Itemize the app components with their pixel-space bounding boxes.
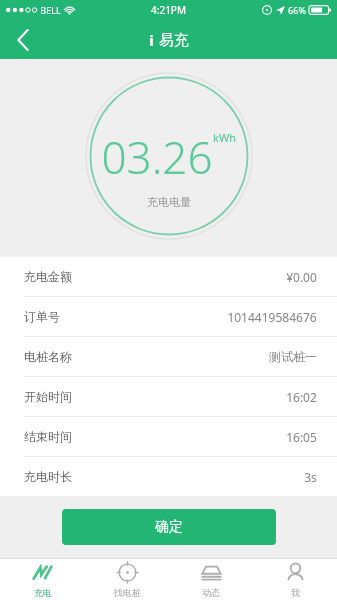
staticText: 电桩名称: [24, 349, 72, 364]
staticText: 1014419584676: [227, 309, 317, 325]
button[interactable]: 找电桩: [85, 559, 169, 600]
button[interactable]: 动态: [169, 559, 253, 600]
staticText: 确定: [155, 518, 183, 536]
staticText: 16:02: [286, 389, 317, 405]
staticText: 测试桩一: [269, 349, 317, 364]
staticText: 66%: [288, 4, 306, 16]
staticText: 3s: [304, 469, 317, 485]
staticText: 03.26: [101, 127, 213, 187]
staticText: 充电金额: [24, 269, 72, 284]
staticText: 充电电量: [147, 195, 191, 209]
button[interactable]: 开始时间: [0, 377, 337, 416]
staticText: 4:21PM: [151, 3, 186, 17]
staticText: 易充: [159, 31, 189, 50]
button[interactable]: 充电时长: [0, 457, 337, 496]
button[interactable]: 充电: [0, 559, 85, 600]
button[interactable]: 我: [253, 559, 337, 600]
staticText: 找电桩: [114, 587, 141, 598]
staticText: 结束时间: [24, 429, 72, 444]
staticText: 我: [291, 587, 300, 598]
staticText: 16:05: [286, 429, 317, 445]
button[interactable]: 电桩名称: [0, 337, 337, 376]
button[interactable]: 订单号: [0, 297, 337, 336]
staticText: ¥0.00: [286, 269, 317, 285]
staticText: 动态: [202, 587, 220, 598]
staticText: 订单号: [24, 309, 60, 324]
button[interactable]: 结束时间: [0, 417, 337, 456]
staticText: 充电时长: [24, 469, 72, 484]
staticText: i: [149, 30, 154, 50]
staticText: 充电: [34, 587, 52, 598]
button[interactable]: 充电金额: [0, 257, 337, 296]
button[interactable]: Back: [0, 20, 46, 59]
button[interactable]: 确定: [62, 509, 276, 545]
staticText: BELL: [40, 4, 61, 16]
staticText: 开始时间: [24, 389, 72, 404]
staticText: kWh: [213, 130, 236, 145]
